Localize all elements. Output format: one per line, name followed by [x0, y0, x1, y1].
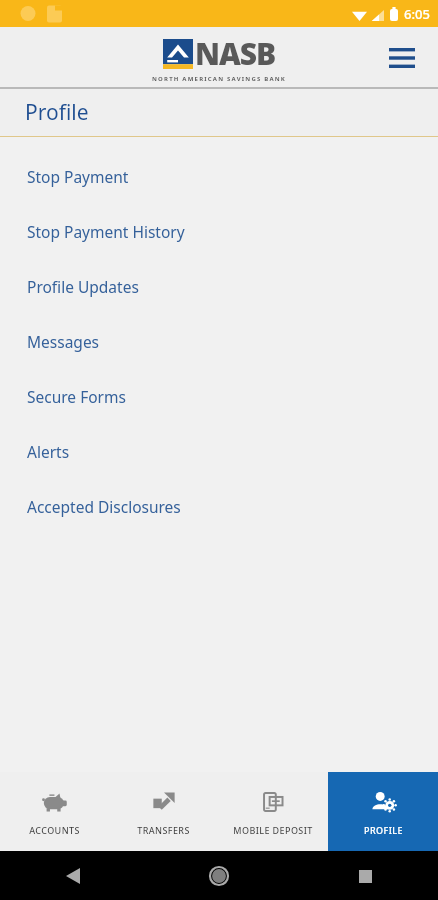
- staticText: Alerts: [27, 441, 70, 462]
- button[interactable]: Back: [53, 856, 93, 896]
- staticText: Stop Payment: [27, 166, 129, 187]
- button[interactable]: Accepted Disclosures: [0, 479, 438, 534]
- staticText: 6:05: [404, 5, 430, 23]
- staticText: TRANSFERS: [137, 824, 190, 836]
- staticText: Secure Forms: [27, 386, 126, 407]
- button[interactable]: Recents: [345, 856, 385, 896]
- staticText: NASB: [195, 33, 276, 74]
- button[interactable]: TRANSFERS: [109, 772, 218, 851]
- button[interactable]: Secure Forms: [0, 369, 438, 424]
- button[interactable]: Home: [199, 856, 239, 896]
- button[interactable]: Messages: [0, 314, 438, 369]
- staticText: PROFILE: [364, 824, 403, 836]
- staticText: Profile Updates: [27, 276, 139, 297]
- button[interactable]: Stop Payment: [0, 149, 438, 204]
- button[interactable]: ACCOUNTS: [0, 772, 109, 851]
- button[interactable]: PROFILE: [328, 772, 438, 851]
- staticText: Messages: [27, 331, 100, 352]
- button[interactable]: Alerts: [0, 424, 438, 479]
- button[interactable]: MOBILE DEPOSIT: [218, 772, 328, 851]
- button[interactable]: Profile Updates: [0, 259, 438, 314]
- staticText: Accepted Disclosures: [27, 496, 181, 517]
- staticText: MOBILE DEPOSIT: [233, 824, 313, 836]
- staticText: NORTH AMERICAN SAVINGS BANK: [152, 75, 286, 83]
- button[interactable]: Stop Payment History: [0, 204, 438, 259]
- staticText: Profile: [25, 98, 89, 127]
- button[interactable]: Menu: [378, 34, 426, 82]
- staticText: ACCOUNTS: [29, 824, 80, 836]
- staticText: Stop Payment History: [27, 221, 185, 242]
